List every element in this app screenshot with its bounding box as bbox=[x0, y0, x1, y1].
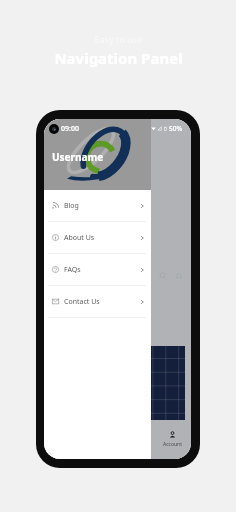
staticText: Username bbox=[52, 150, 104, 164]
button[interactable]: FAQs bbox=[44, 254, 151, 285]
staticText: 50% bbox=[169, 124, 182, 133]
button[interactable]: Contact Us bbox=[44, 286, 151, 317]
button[interactable]: Home bbox=[44, 419, 80, 459]
staticText: Navigation Panel bbox=[54, 48, 183, 68]
staticText: FAQs bbox=[64, 265, 81, 275]
staticText: Blog bbox=[64, 201, 79, 211]
staticText: Contact Us bbox=[64, 297, 100, 307]
button[interactable]: Cart bbox=[117, 419, 154, 459]
button[interactable]: About Us bbox=[44, 222, 151, 253]
button[interactable]: Blog bbox=[44, 190, 151, 221]
button[interactable]: Account bbox=[154, 419, 191, 459]
staticText: Account bbox=[163, 441, 183, 448]
staticText: About Us bbox=[64, 233, 95, 243]
staticText: 09:00 bbox=[61, 124, 79, 134]
